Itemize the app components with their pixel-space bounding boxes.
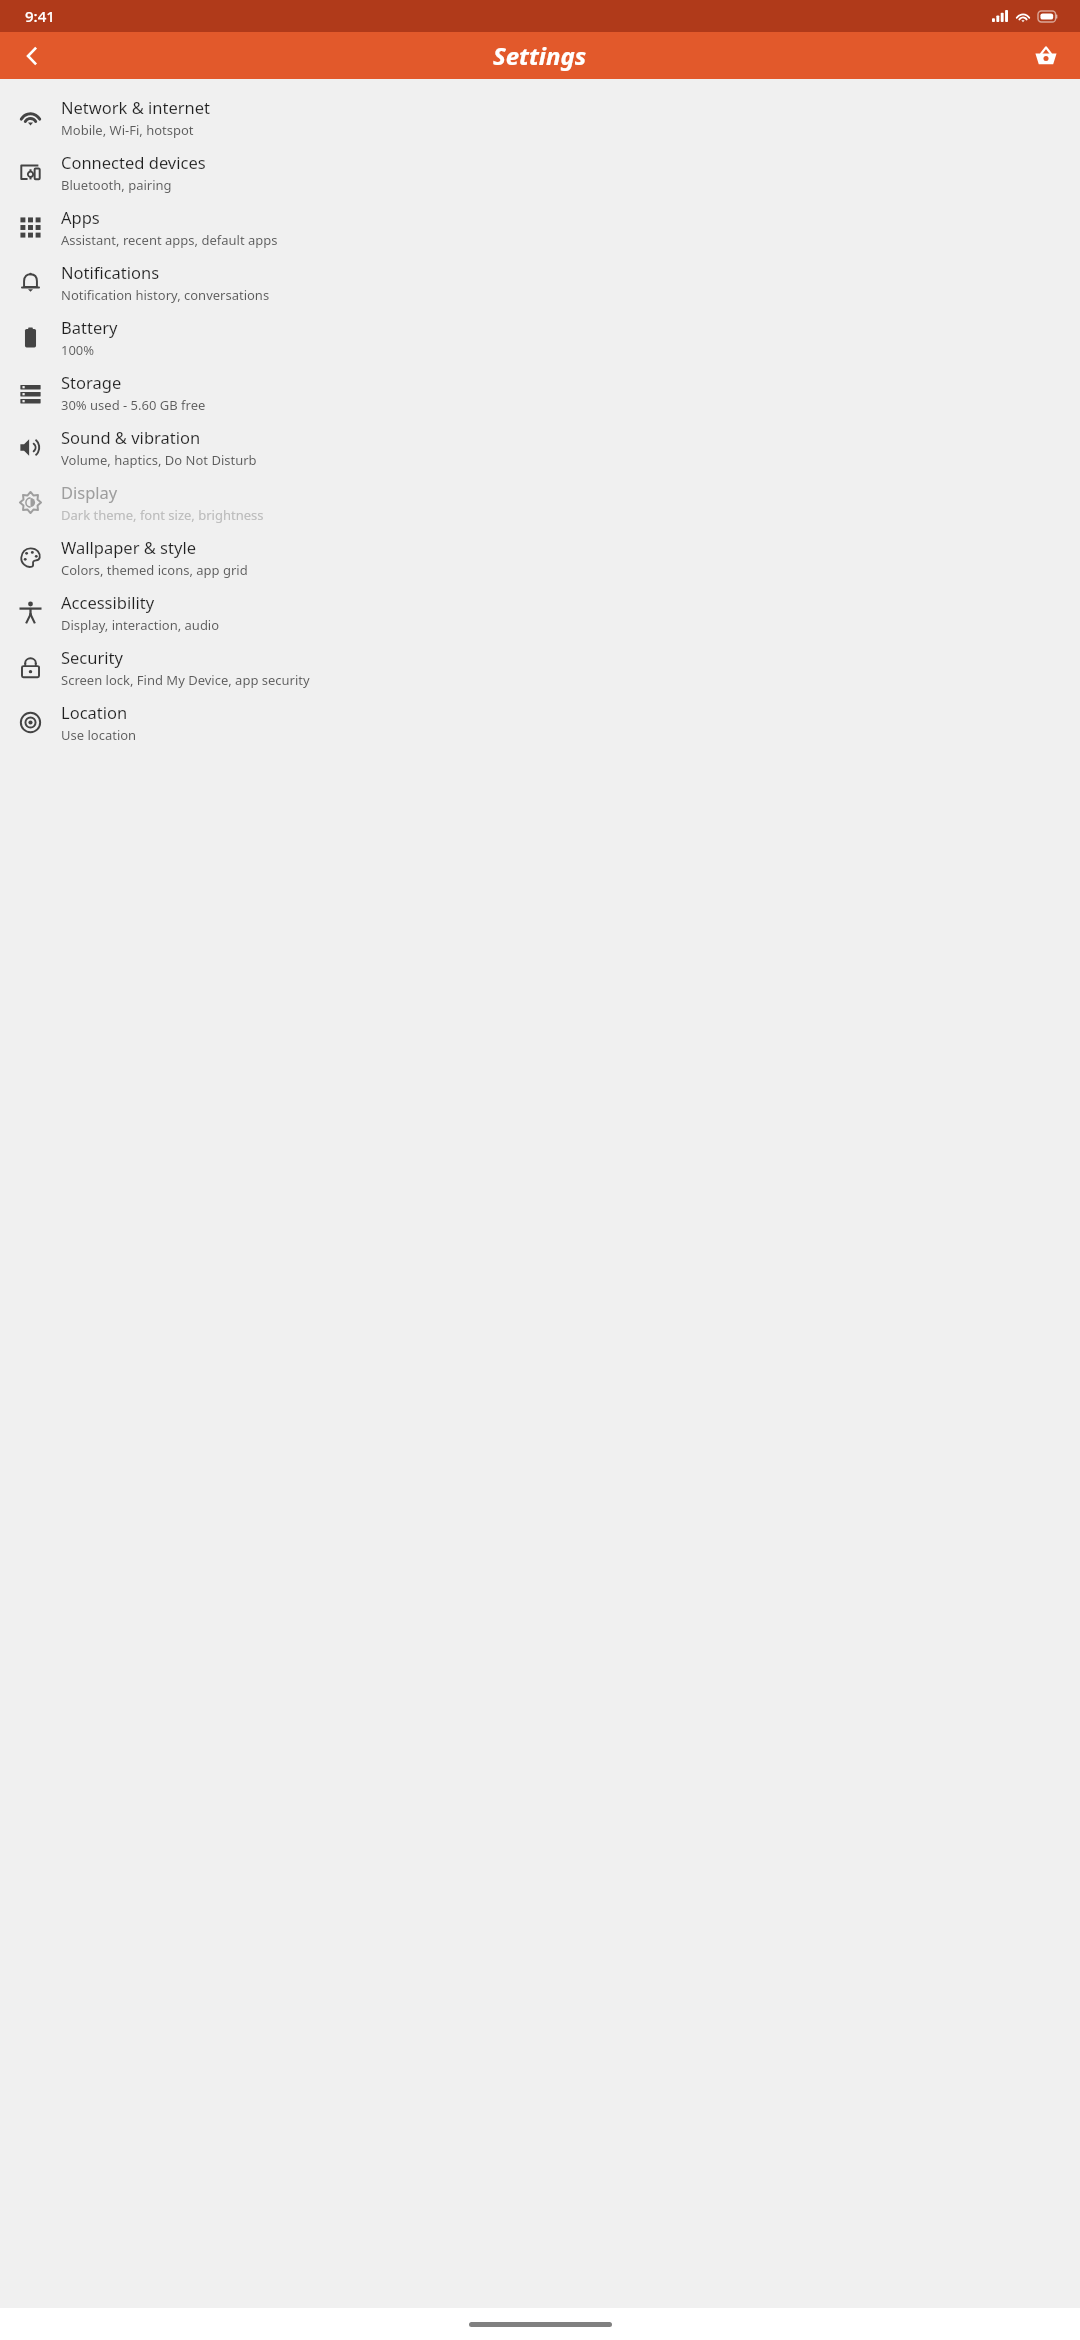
staticText: Security bbox=[61, 646, 123, 668]
staticText: Battery bbox=[61, 316, 118, 338]
staticText: Network & internet bbox=[61, 96, 211, 118]
button[interactable]: Back bbox=[8, 32, 56, 79]
staticText: Settings bbox=[493, 39, 587, 72]
staticText: Colors, themed icons, app grid bbox=[61, 561, 248, 579]
button[interactable]: Accessibility bbox=[0, 585, 1080, 640]
staticText: Sound & vibration bbox=[61, 426, 201, 448]
staticText: Screen lock, Find My Device, app securit… bbox=[61, 671, 310, 689]
button[interactable]: Display bbox=[0, 475, 1080, 530]
button[interactable]: Apps bbox=[0, 200, 1080, 255]
staticText: Mobile, Wi-Fi, hotspot bbox=[61, 121, 194, 139]
button[interactable]: Security bbox=[0, 640, 1080, 695]
staticText: Connected devices bbox=[61, 151, 206, 173]
staticText: 9:41 bbox=[25, 6, 55, 26]
button[interactable]: Wallpaper & style bbox=[0, 530, 1080, 585]
staticText: Wallpaper & style bbox=[61, 536, 196, 558]
button[interactable]: Shopping basket bbox=[1022, 32, 1070, 79]
button[interactable]: Sound & vibration bbox=[0, 420, 1080, 475]
staticText: Display, interaction, audio bbox=[61, 616, 220, 634]
staticText: Assistant, recent apps, default apps bbox=[61, 231, 278, 249]
staticText: 30% used - 5.60 GB free bbox=[61, 396, 206, 414]
staticText: Bluetooth, pairing bbox=[61, 176, 172, 194]
staticText: Dark theme, font size, brightness bbox=[61, 506, 264, 524]
button[interactable]: Connected devices bbox=[0, 145, 1080, 200]
button[interactable]: Location bbox=[0, 695, 1080, 750]
staticText: Notifications bbox=[61, 261, 160, 283]
staticText: Apps bbox=[61, 206, 100, 228]
staticText: Display bbox=[61, 481, 118, 503]
button[interactable]: Notifications bbox=[0, 255, 1080, 310]
staticText: Notification history, conversations bbox=[61, 286, 270, 304]
staticText: 100% bbox=[61, 341, 95, 359]
button[interactable]: Storage bbox=[0, 365, 1080, 420]
staticText: Volume, haptics, Do Not Disturb bbox=[61, 451, 257, 469]
staticText: Location bbox=[61, 701, 128, 723]
button[interactable]: Network & internet bbox=[0, 90, 1080, 145]
staticText: Storage bbox=[61, 371, 122, 393]
staticText: Accessibility bbox=[61, 591, 155, 613]
staticText: Use location bbox=[61, 726, 137, 744]
button[interactable]: Battery bbox=[0, 310, 1080, 365]
